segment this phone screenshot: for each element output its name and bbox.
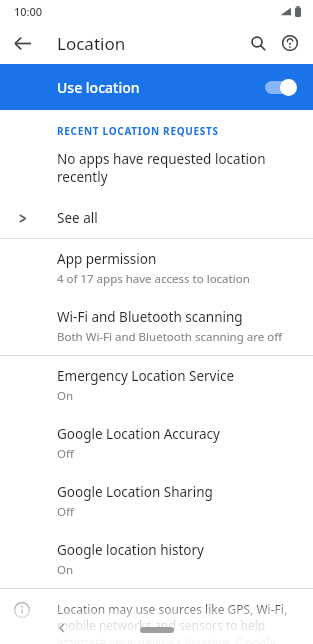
button[interactable]: Help: [274, 27, 306, 59]
staticText: On: [57, 562, 74, 578]
button[interactable]: Google location history: [0, 530, 313, 588]
staticText: Wi-Fi and Bluetooth scanning: [57, 308, 243, 326]
button[interactable]: App permission: [0, 239, 313, 297]
staticText: RECENT LOCATION REQUESTS: [57, 124, 219, 138]
button[interactable]: Home: [140, 627, 174, 633]
staticText: Emergency Location Service: [57, 367, 235, 385]
staticText: Off: [57, 504, 74, 520]
button[interactable]: Search: [242, 27, 274, 59]
staticText: Use location: [57, 78, 140, 97]
button[interactable]: Back: [54, 620, 70, 636]
staticText: Both Wi-Fi and Bluetooth scanning are of…: [57, 329, 283, 345]
staticText: No apps have requested location recently: [57, 150, 301, 186]
button[interactable]: Wi-Fi and Bluetooth scanning: [0, 297, 313, 355]
button[interactable]: Use location: [0, 64, 313, 110]
staticText: See all: [57, 209, 98, 227]
staticText: Off: [57, 446, 74, 462]
button[interactable]: No apps have requested location recently: [0, 148, 313, 188]
staticText: Location may use sources like GPS, Wi-Fi…: [57, 601, 297, 644]
staticText: Google location history: [57, 541, 204, 559]
button[interactable]: Google Location Sharing: [0, 472, 313, 530]
staticText: 4 of 17 apps have access to location: [57, 271, 250, 287]
staticText: Google Location Sharing: [57, 483, 213, 501]
button[interactable]: Back: [8, 29, 36, 57]
staticText: App permission: [57, 250, 157, 268]
button[interactable]: Emergency Location Service: [0, 356, 313, 414]
button[interactable]: Google Location Accuracy: [0, 414, 313, 472]
staticText: Location: [57, 32, 126, 55]
staticText: 10:00: [14, 4, 43, 19]
staticText: Google Location Accuracy: [57, 425, 220, 443]
button[interactable]: See all: [0, 198, 313, 238]
staticText: On: [57, 388, 74, 404]
